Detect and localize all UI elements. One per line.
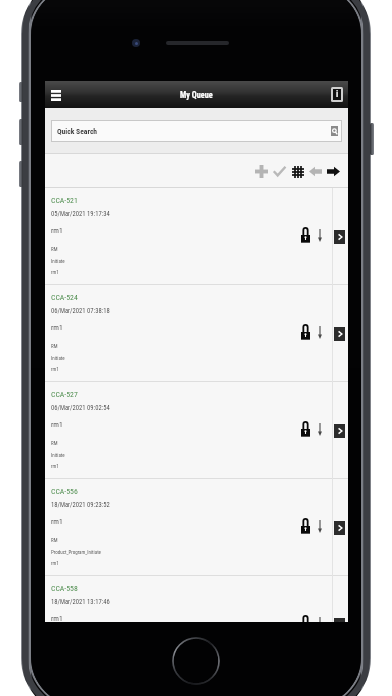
staticText: rm1 bbox=[51, 560, 59, 566]
staticText: rm1 bbox=[51, 517, 63, 526]
button[interactable]: Locked bbox=[299, 226, 312, 244]
staticText: rm1 bbox=[51, 614, 63, 622]
staticText: Quick Search bbox=[57, 127, 98, 136]
button[interactable]: CCA-521 bbox=[45, 188, 348, 285]
staticText: Product_Program_Initiate bbox=[51, 549, 101, 555]
staticText: CCA-558 bbox=[51, 584, 78, 593]
button[interactable]: Open item bbox=[335, 231, 344, 243]
button[interactable]: Open item bbox=[335, 328, 344, 340]
button[interactable]: Open item bbox=[335, 425, 344, 437]
staticText: CCA-556 bbox=[51, 487, 78, 496]
button[interactable]: Home bbox=[172, 637, 220, 685]
button[interactable]: Grid view bbox=[290, 164, 305, 179]
staticText: CCA-527 bbox=[51, 390, 78, 399]
staticText: rm1 bbox=[51, 463, 59, 469]
button[interactable]: Info bbox=[333, 89, 341, 100]
staticText: 18/Mar/2021 13:17:46 bbox=[51, 598, 110, 606]
button[interactable]: CCA-524 bbox=[45, 285, 348, 382]
staticText: Initiate bbox=[51, 452, 65, 458]
button[interactable]: Download bbox=[315, 227, 325, 243]
button[interactable]: Add bbox=[254, 164, 269, 179]
staticText: Initiate bbox=[51, 258, 65, 264]
staticText: 05/Mar/2021 19:17:34 bbox=[51, 210, 110, 218]
staticText: RM bbox=[51, 440, 58, 446]
staticText: rm1 bbox=[51, 323, 63, 332]
button[interactable]: Download bbox=[315, 324, 325, 340]
button[interactable]: Locked bbox=[299, 323, 312, 341]
button[interactable]: Next bbox=[326, 164, 341, 179]
button[interactable]: CCA-558 bbox=[45, 576, 348, 622]
staticText: rm1 bbox=[51, 269, 59, 275]
staticText: 18/Mar/2021 09:23:52 bbox=[51, 501, 110, 509]
staticText: RM bbox=[51, 246, 58, 252]
staticText: 06/Mar/2021 07:38:18 bbox=[51, 307, 110, 315]
button[interactable]: Previous bbox=[308, 164, 323, 179]
button[interactable]: Download bbox=[315, 615, 325, 622]
staticText: CCA-521 bbox=[51, 196, 78, 205]
staticText: rm1 bbox=[51, 366, 59, 372]
button[interactable]: Locked bbox=[299, 614, 312, 622]
staticText: RM bbox=[51, 343, 58, 349]
staticText: My Queue bbox=[180, 90, 213, 100]
button[interactable]: CCA-556 bbox=[45, 479, 348, 576]
staticText: i bbox=[336, 89, 339, 100]
button[interactable]: Approve bbox=[272, 164, 287, 179]
staticText: rm1 bbox=[51, 420, 63, 429]
button[interactable]: Open item bbox=[335, 522, 344, 534]
staticText: rm1 bbox=[51, 226, 63, 235]
button[interactable]: CCA-527 bbox=[45, 382, 348, 479]
staticText: RM bbox=[51, 537, 58, 543]
button[interactable]: Menu bbox=[47, 86, 65, 104]
staticText: Initiate bbox=[51, 355, 65, 361]
staticText: 06/Mar/2021 09:02:54 bbox=[51, 404, 110, 412]
button[interactable]: Download bbox=[315, 518, 325, 534]
button[interactable]: Locked bbox=[299, 420, 312, 438]
button[interactable]: Search bbox=[331, 126, 338, 136]
button[interactable]: Locked bbox=[299, 517, 312, 535]
button[interactable]: Download bbox=[315, 421, 325, 437]
staticText: CCA-524 bbox=[51, 293, 78, 302]
button[interactable]: Quick Search bbox=[51, 120, 342, 142]
